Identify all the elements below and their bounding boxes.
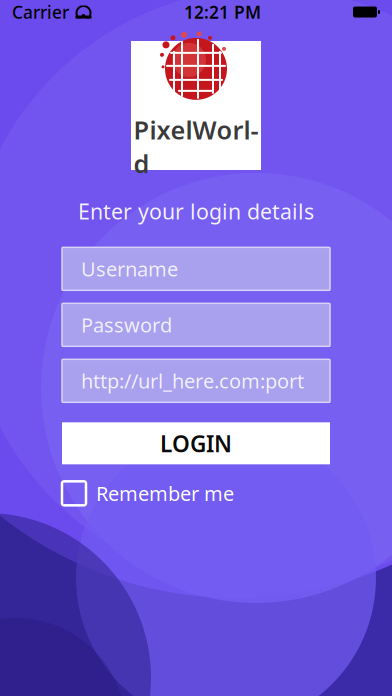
staticText: Remember me (96, 480, 234, 507)
button[interactable]: LOGIN (62, 422, 330, 464)
staticText: PixelWorld (133, 113, 258, 180)
staticText: Enter your login details (78, 197, 314, 225)
staticText: Username (81, 256, 178, 282)
button[interactable]: Password (62, 303, 330, 346)
staticText: LOGIN (160, 428, 232, 458)
staticText: Password (81, 312, 172, 338)
staticText: Carrier (12, 0, 69, 23)
button[interactable]: Username (62, 247, 330, 290)
button[interactable]: Remember me (62, 480, 330, 506)
staticText: 12:21 PM (184, 0, 261, 23)
staticText: http://url_here.com:port (81, 368, 304, 394)
button[interactable]: http://url_here.com:port (62, 359, 330, 402)
